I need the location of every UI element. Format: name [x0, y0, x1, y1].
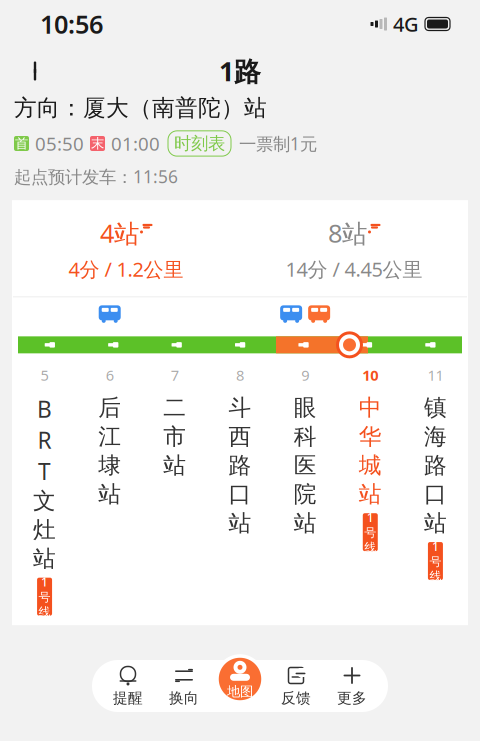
staticText: 站: [228, 509, 251, 537]
staticText: 眼: [294, 394, 317, 422]
staticText: 1: [41, 574, 48, 590]
staticText: 更多: [337, 689, 367, 707]
staticText: 镇: [424, 394, 447, 422]
staticText: 站: [33, 545, 56, 573]
staticText: 末: [91, 135, 104, 152]
staticText: 站: [424, 509, 447, 537]
staticText: 1: [432, 538, 439, 554]
staticText: 1: [367, 509, 374, 525]
staticText: R: [38, 425, 52, 455]
staticText: T: [38, 456, 51, 486]
staticText: 斗: [228, 394, 251, 422]
staticText: 地图: [227, 683, 253, 700]
staticText: 线: [39, 605, 51, 619]
staticText: B: [37, 394, 52, 424]
staticText: 8: [236, 365, 244, 385]
staticText: 路: [228, 451, 251, 479]
staticText: 城: [359, 451, 382, 479]
staticText: 西: [228, 423, 251, 450]
staticText: 埭: [98, 451, 121, 479]
staticText: 号: [364, 525, 376, 540]
button[interactable]: 时刻表: [168, 131, 231, 156]
staticText: 线: [429, 569, 441, 584]
button[interactable]: 返回: [20, 56, 50, 86]
staticText: 海: [424, 423, 447, 450]
button[interactable]: 7: [142, 365, 207, 616]
staticText: 文: [33, 487, 56, 515]
staticText: 反馈: [281, 689, 311, 707]
staticText: 9: [301, 365, 309, 385]
staticText: 号: [429, 554, 441, 569]
staticText: 首: [15, 135, 28, 152]
staticText: 一票制1元: [239, 132, 317, 155]
staticText: 01:00: [111, 131, 160, 156]
staticText: 05:50: [35, 131, 84, 156]
staticText: 口: [424, 480, 447, 508]
staticText: 提醒: [113, 689, 143, 707]
staticText: 医: [294, 451, 317, 479]
staticText: 华: [359, 423, 382, 450]
button[interactable]: 更多: [324, 664, 380, 708]
staticText: 起点预计发车：11:56: [14, 165, 178, 188]
staticText: 6: [106, 365, 114, 385]
staticText: 4G: [393, 11, 419, 37]
staticText: 中: [359, 394, 382, 422]
staticText: 后: [98, 394, 121, 422]
staticText: 1路: [219, 53, 261, 89]
staticText: 科: [294, 423, 317, 450]
staticText: 路: [424, 451, 447, 479]
staticText: 线: [364, 540, 376, 555]
staticText: 10:56: [40, 7, 103, 41]
staticText: 口: [228, 480, 251, 508]
staticText: 4站: [100, 216, 139, 250]
staticText: 10: [362, 365, 378, 385]
staticText: 4分 / 1.2公里: [68, 256, 183, 282]
staticText: 号: [39, 590, 51, 605]
staticText: 站: [163, 451, 186, 479]
button[interactable]: 反馈: [268, 664, 324, 708]
button[interactable]: 8: [207, 365, 272, 616]
staticText: 5: [41, 365, 49, 385]
button[interactable]: 6: [77, 365, 142, 616]
staticText: 时刻表: [174, 133, 225, 154]
staticText: 7: [171, 365, 179, 385]
staticText: 14分 / 4.45公里: [285, 256, 422, 282]
staticText: 站: [98, 480, 121, 508]
button[interactable]: 换向: [156, 664, 212, 708]
staticText: 11: [427, 365, 443, 385]
staticText: 江: [98, 423, 121, 450]
button[interactable]: 11: [403, 365, 468, 616]
button[interactable]: 10: [338, 365, 403, 616]
button[interactable]: 地图: [217, 656, 263, 702]
staticText: 二: [163, 394, 186, 422]
staticText: 站: [359, 480, 382, 508]
staticText: 换向: [169, 689, 199, 707]
staticText: 市: [163, 423, 186, 450]
button[interactable]: 提醒: [100, 664, 156, 708]
staticText: 院: [294, 480, 317, 508]
staticText: 灶: [33, 516, 56, 544]
staticText: 方向：厦大（南普陀）站: [14, 94, 267, 122]
button[interactable]: 9: [273, 365, 338, 616]
staticText: 站: [294, 509, 317, 537]
staticText: 8站: [328, 216, 367, 250]
button[interactable]: 5: [12, 365, 77, 616]
